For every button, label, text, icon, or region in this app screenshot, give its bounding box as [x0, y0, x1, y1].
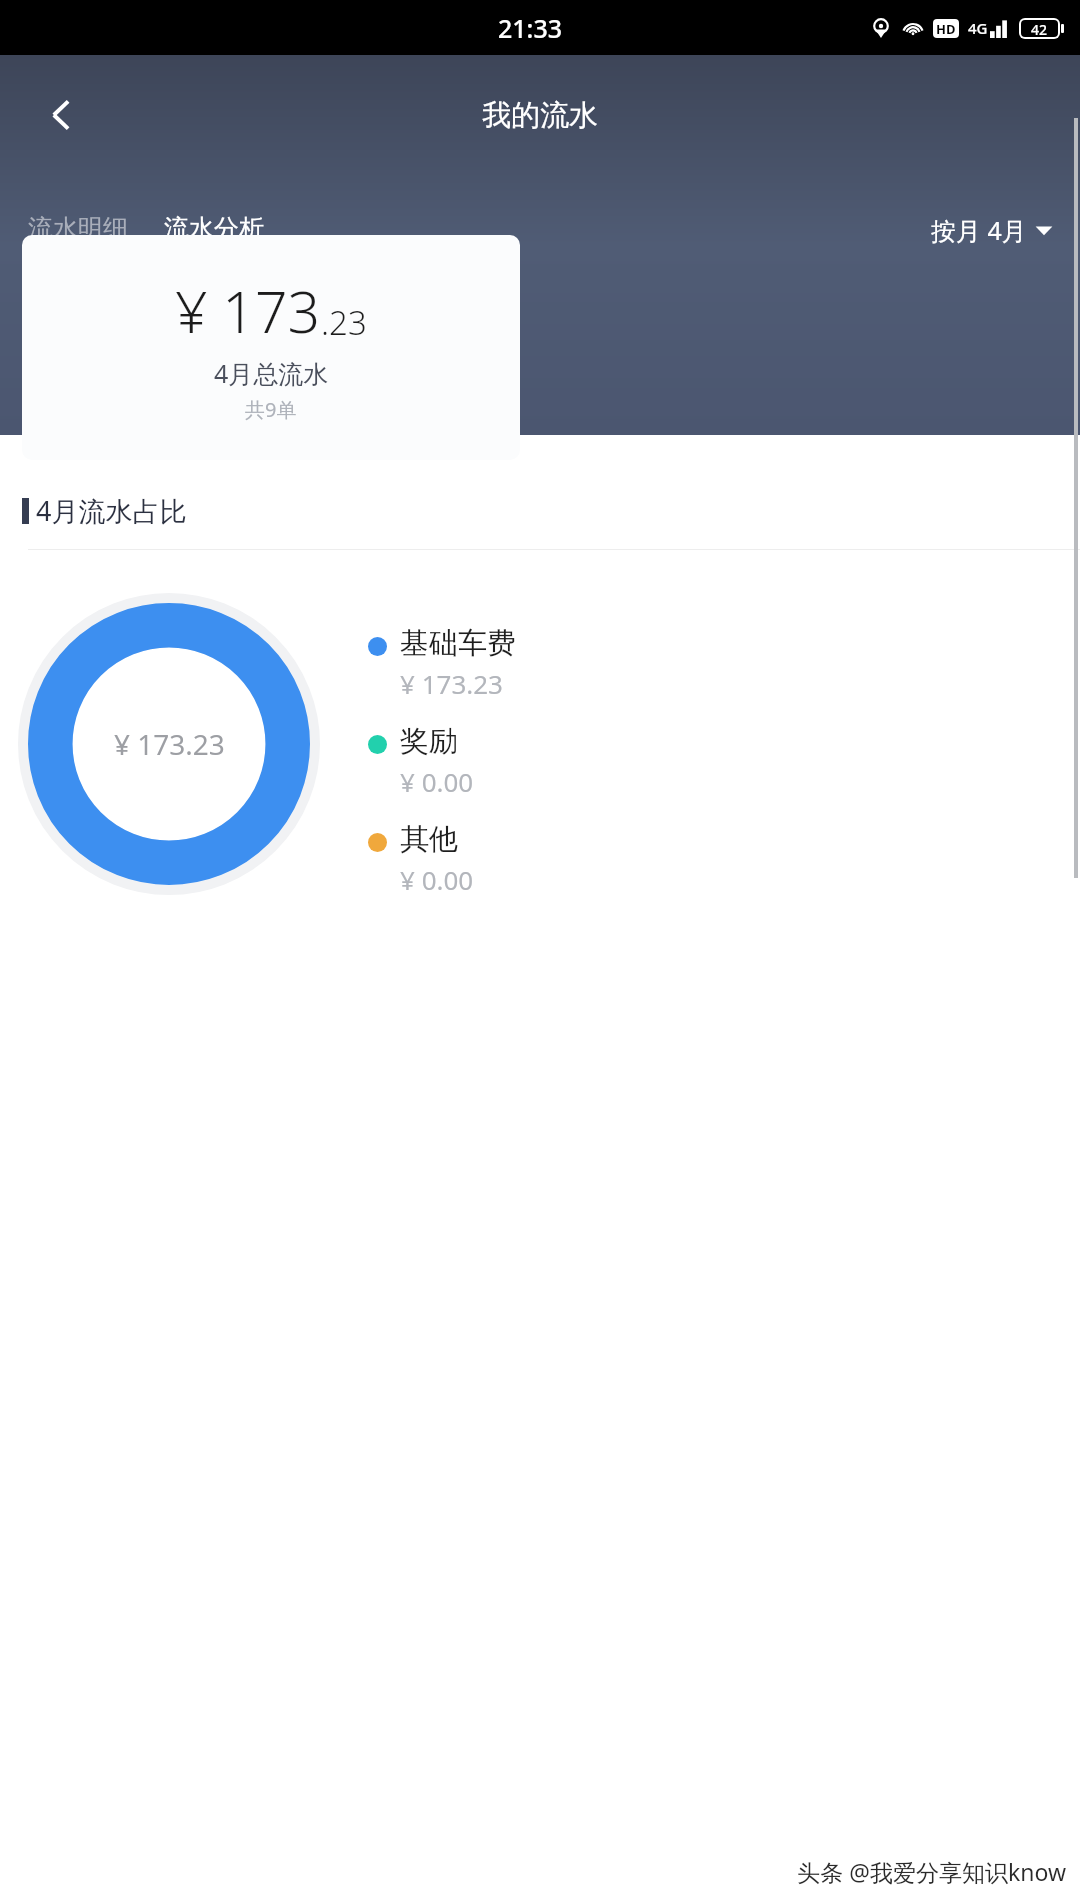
staticText: 头条 @我爱分享知识know: [797, 1856, 1066, 1887]
button[interactable]: ¥ 173: [22, 235, 520, 460]
staticText: 21:33: [498, 11, 563, 45]
button[interactable]: Back: [30, 83, 94, 147]
staticText: ¥ 173.23: [114, 725, 225, 763]
staticText: .23: [321, 300, 367, 345]
staticText: ¥ 173.23: [400, 666, 503, 701]
staticText: 4月流水占比: [36, 492, 187, 529]
button[interactable]: 其他: [368, 821, 474, 897]
staticText: 流水明细: [28, 213, 128, 244]
staticText: 按月 4月: [931, 213, 1034, 247]
staticText: 我的流水: [482, 97, 598, 134]
staticText: 流水分析: [164, 213, 264, 244]
staticText: 奖励: [400, 723, 458, 760]
button[interactable]: 流水明细: [22, 213, 134, 244]
staticText: 其他: [400, 821, 458, 858]
staticText: 基础车费: [400, 625, 516, 662]
staticText: HD: [936, 20, 956, 38]
button[interactable]: 奖励: [368, 723, 474, 799]
staticText: 4G: [968, 18, 988, 38]
staticText: ¥ 0.00: [400, 862, 474, 897]
button[interactable]: 基础车费: [368, 625, 516, 701]
staticText: 4月总流水: [214, 356, 329, 390]
staticText: ¥ 173: [175, 272, 321, 350]
button[interactable]: 流水分析: [158, 213, 270, 261]
staticText: 共9单: [245, 396, 297, 423]
staticText: 42: [1031, 20, 1048, 37]
staticText: ¥ 0.00: [400, 764, 474, 799]
button[interactable]: 按月 4月: [931, 213, 1054, 247]
